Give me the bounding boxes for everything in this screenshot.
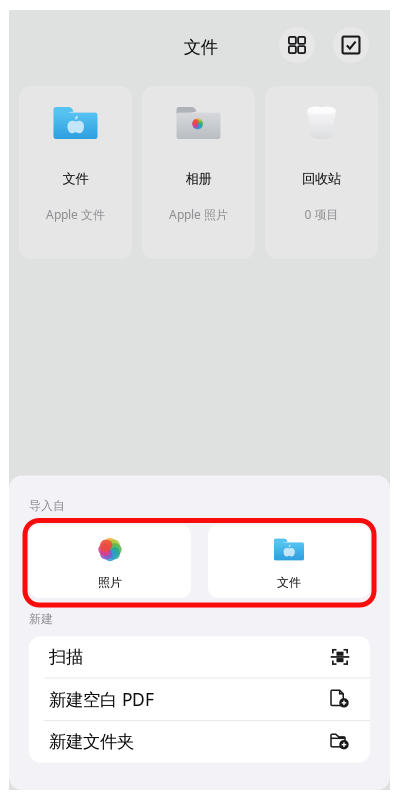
button[interactable]: 新建空白 PDF: [29, 678, 370, 721]
staticText: 回收站: [302, 170, 341, 187]
staticText: 文件: [277, 575, 301, 590]
button[interactable]: 扫描: [29, 636, 370, 678]
staticText: 新建空白 PDF: [49, 688, 154, 711]
staticText: 导入自: [29, 498, 65, 513]
button[interactable]: 相册: [142, 86, 255, 259]
staticText: 新建: [29, 612, 53, 626]
staticText: 文件: [184, 37, 218, 58]
button[interactable]: 文件: [19, 86, 132, 259]
button[interactable]: 照片: [29, 525, 191, 598]
staticText: 0 项目: [304, 206, 338, 222]
staticText: 新建文件夹: [49, 731, 134, 752]
staticText: 扫描: [49, 646, 83, 668]
button[interactable]: 回收站: [265, 86, 378, 259]
staticText: Apple 文件: [46, 206, 105, 222]
staticText: 文件: [62, 170, 88, 187]
staticText: 相册: [185, 170, 211, 187]
button[interactable]: 新建文件夹: [29, 721, 370, 763]
button[interactable]: Grid view: [279, 27, 315, 63]
staticText: Apple 照片: [169, 206, 228, 222]
button[interactable]: Select: [333, 27, 369, 63]
staticText: 照片: [98, 575, 122, 590]
button[interactable]: 文件: [208, 525, 370, 598]
